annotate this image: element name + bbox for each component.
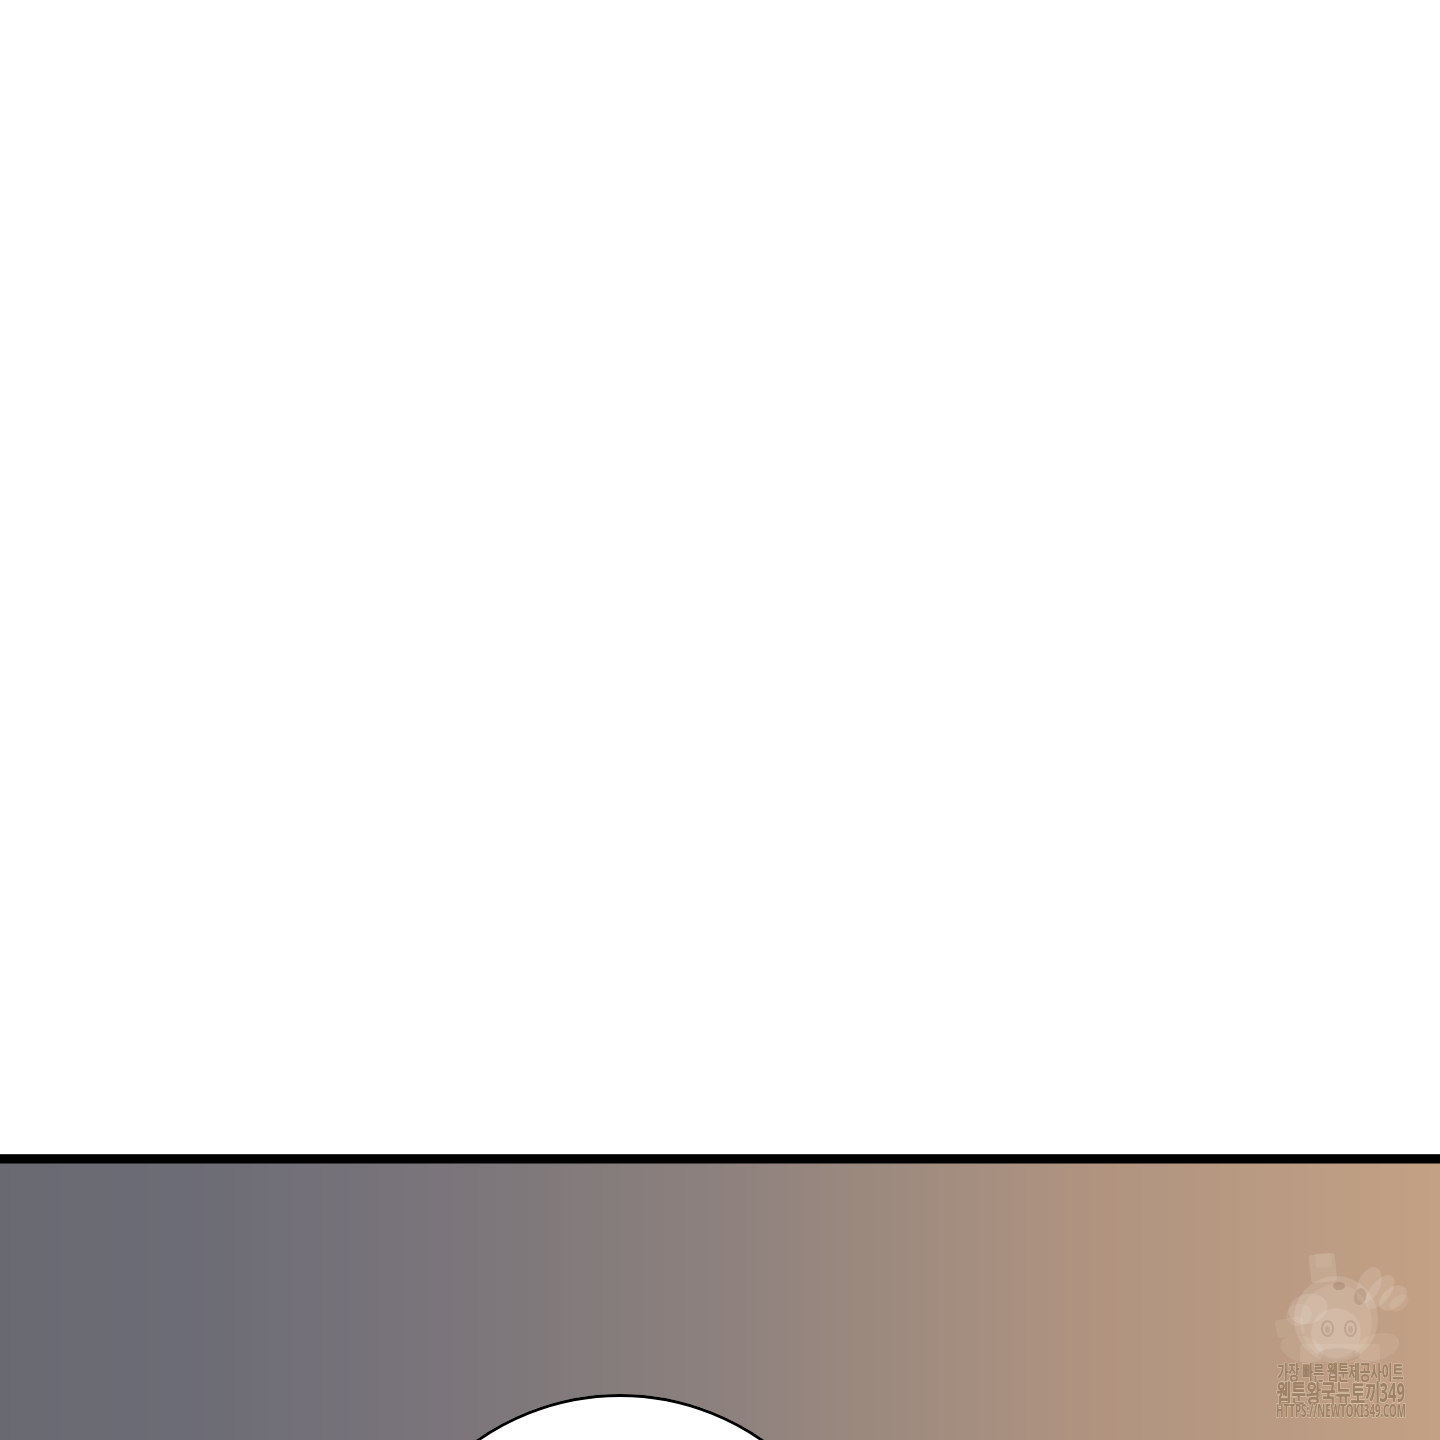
button[interactable]: Comic page, tap to show controls — [0, 0, 1440, 1440]
